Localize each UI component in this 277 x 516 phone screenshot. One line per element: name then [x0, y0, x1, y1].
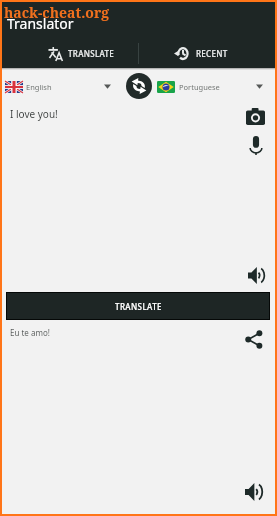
button[interactable]: RECENT — [138, 40, 275, 66]
button[interactable]: Microphone — [242, 131, 270, 159]
button[interactable]: Swap languages — [126, 73, 152, 99]
button[interactable]: Listen to translation — [240, 478, 268, 506]
staticText: TRANSLATE — [68, 48, 115, 59]
staticText: hack-cheat.org — [4, 3, 110, 22]
staticText: English — [26, 82, 52, 92]
button[interactable]: English — [26, 78, 108, 96]
staticText: Eu te amo! — [10, 327, 50, 338]
button[interactable]: Listen to source text — [242, 261, 270, 289]
button[interactable]: Camera — [241, 102, 269, 130]
staticText: TRANSLATE — [115, 301, 162, 312]
button[interactable]: TRANSLATE — [2, 40, 138, 66]
button[interactable]: Share — [240, 325, 268, 353]
button[interactable]: Portuguese — [179, 78, 257, 96]
staticText: I love you! — [10, 107, 58, 121]
staticText: Translator — [7, 14, 74, 33]
staticText: Portuguese — [179, 82, 220, 92]
button[interactable]: TRANSLATE — [7, 293, 269, 319]
staticText: RECENT — [196, 48, 228, 59]
